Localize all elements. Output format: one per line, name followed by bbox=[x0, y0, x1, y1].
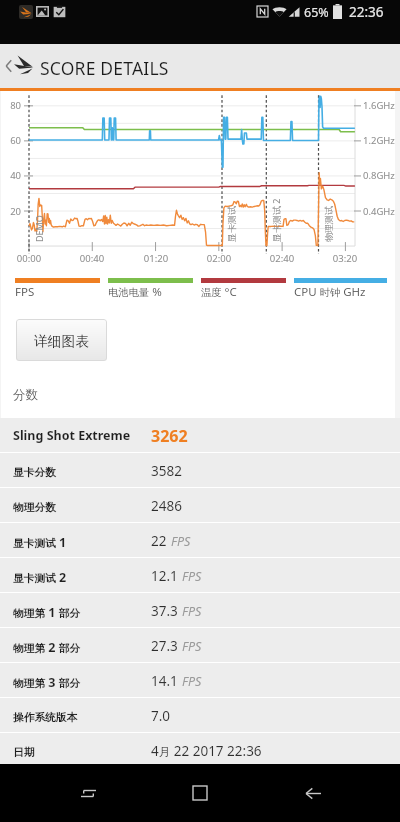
button[interactable]: Back bbox=[288, 768, 338, 818]
button[interactable]: 日期 bbox=[0, 733, 400, 768]
staticText: 1.6GHz bbox=[363, 99, 395, 112]
staticText: 物理第 3 部分 bbox=[13, 674, 81, 691]
staticText: 12.1 bbox=[151, 567, 178, 585]
button[interactable]: 显卡测试 2 bbox=[0, 558, 400, 593]
button[interactable]: Back bbox=[0, 44, 38, 88]
staticText: 00:00 bbox=[14, 252, 44, 265]
staticText: 80 bbox=[0, 99, 21, 112]
staticText: 物理分数 bbox=[13, 501, 56, 514]
staticText: 3582 bbox=[151, 462, 182, 480]
staticText: 27.3 bbox=[151, 637, 178, 655]
button[interactable]: 物理第 3 部分 bbox=[0, 663, 400, 698]
staticText: 温度 °C bbox=[201, 284, 237, 300]
staticText: 物理第 2 部分 bbox=[13, 639, 81, 656]
staticText: 14.1 bbox=[151, 672, 178, 690]
button[interactable]: 物理第 2 部分 bbox=[0, 628, 400, 663]
staticText: 02:00 bbox=[204, 252, 234, 265]
button[interactable]: 详细图表 bbox=[16, 319, 107, 361]
staticText: 20 bbox=[0, 205, 21, 218]
staticText: 物理第 1 部分 bbox=[13, 604, 81, 621]
staticText: FPS bbox=[182, 568, 202, 585]
staticText: 22:36 bbox=[349, 3, 384, 21]
staticText: FPS bbox=[182, 638, 202, 655]
staticText: 显卡测试 2 bbox=[13, 569, 67, 586]
button[interactable]: 操作系统版本 bbox=[0, 698, 400, 733]
staticText: 60 bbox=[0, 134, 21, 147]
staticText: FPS bbox=[15, 284, 35, 300]
staticText: 0.8GHz bbox=[363, 169, 395, 182]
staticText: 2486 bbox=[151, 497, 182, 515]
button[interactable]: Sling Shot Extreme bbox=[0, 418, 400, 453]
staticText: 00:40 bbox=[77, 252, 107, 265]
staticText: 显卡分数 bbox=[13, 466, 56, 479]
staticText: 01:20 bbox=[141, 252, 171, 265]
button[interactable]: 物理分数 bbox=[0, 488, 400, 523]
button[interactable]: 物理第 1 部分 bbox=[0, 593, 400, 628]
staticText: 1.2GHz bbox=[363, 134, 395, 147]
staticText: 02:40 bbox=[267, 252, 297, 265]
staticText: 37.3 bbox=[151, 602, 178, 620]
staticText: 03:20 bbox=[330, 252, 360, 265]
button[interactable]: 显卡分数 bbox=[0, 453, 400, 488]
staticText: 7.0 bbox=[151, 707, 171, 725]
staticText: 详细图表 bbox=[34, 333, 90, 350]
staticText: 22 bbox=[151, 532, 167, 550]
button[interactable]: Home bbox=[175, 768, 225, 818]
staticText: 0.4GHz bbox=[363, 205, 395, 218]
button[interactable]: Recents bbox=[63, 768, 113, 818]
staticText: 4月 22 2017 22:36 bbox=[151, 742, 262, 760]
staticText: FPS bbox=[182, 673, 202, 690]
staticText: 显卡测试 1 bbox=[13, 534, 67, 551]
staticText: 日期 bbox=[13, 746, 35, 759]
staticText: 65% bbox=[304, 4, 329, 21]
staticText: FPS bbox=[171, 533, 191, 550]
staticText: FPS bbox=[182, 603, 202, 620]
staticText: 操作系统版本 bbox=[13, 711, 78, 724]
staticText: SCORE DETAILS bbox=[40, 56, 169, 80]
staticText: CPU 时钟 GHz bbox=[294, 284, 366, 300]
staticText: 电池电量 % bbox=[108, 284, 162, 300]
button[interactable]: 显卡测试 1 bbox=[0, 523, 400, 558]
staticText: 分数 bbox=[13, 387, 38, 403]
staticText: 40 bbox=[0, 169, 21, 182]
staticText: 3262 bbox=[151, 425, 188, 447]
staticText: Sling Shot Extreme bbox=[13, 427, 131, 444]
